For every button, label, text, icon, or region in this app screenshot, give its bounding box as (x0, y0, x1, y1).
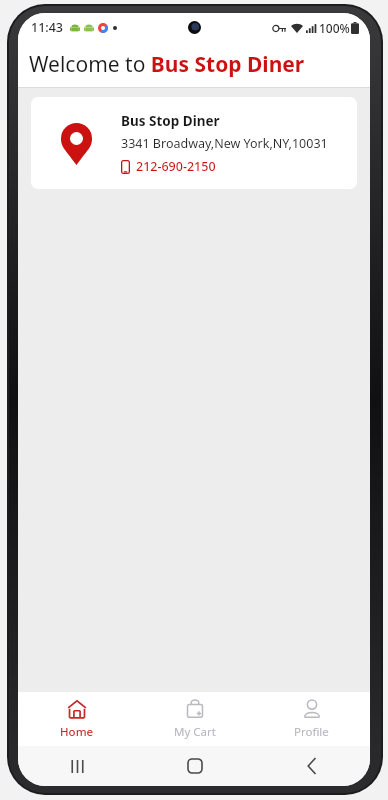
button[interactable]: Home (136, 746, 253, 786)
staticText: 11:43 (31, 19, 64, 36)
button[interactable]: Recents (18, 746, 136, 786)
staticText: Bus Stop Diner (121, 112, 220, 130)
staticText: My Cart (174, 724, 216, 740)
button[interactable]: Back (253, 746, 370, 786)
staticText: 3341 Broadway,New York,NY,10031 (121, 135, 328, 152)
button[interactable]: Call (121, 158, 216, 175)
button[interactable]: Home (18, 692, 136, 746)
staticText: 212-690-2150 (136, 158, 216, 175)
button[interactable]: My Cart (136, 692, 253, 746)
other: Call (121, 160, 130, 174)
button[interactable]: Profile (253, 692, 370, 746)
staticText: 100% (319, 20, 350, 36)
staticText: Profile (294, 724, 329, 740)
button[interactable]: Bus Stop Diner (31, 97, 357, 189)
staticText: Welcome to Bus Stop Diner (29, 50, 305, 79)
staticText: Home (60, 724, 94, 740)
